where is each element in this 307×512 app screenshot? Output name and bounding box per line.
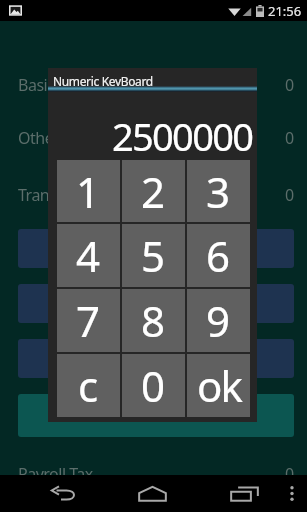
staticText: 0 [285,127,295,149]
button[interactable] [18,284,294,323]
button[interactable]: c [57,354,120,417]
button[interactable] [18,229,294,268]
staticText: 3 [206,163,231,220]
staticText: c [78,357,99,414]
button[interactable]: 5 [122,224,185,287]
staticText: 0 [285,74,295,96]
staticText: Other Allowance [18,127,135,149]
button[interactable]: 7 [57,289,120,352]
button[interactable]: Home [128,475,177,512]
staticText: 6 [206,227,231,284]
staticText: 7 [76,292,101,349]
staticText: 1 [76,163,101,220]
button[interactable]: ok [187,354,250,417]
button[interactable]: 3 [187,160,250,222]
button[interactable]: 1 [57,160,120,222]
staticText: ok [197,357,241,414]
staticText: 2 [141,163,166,220]
button[interactable]: Menu [277,475,306,512]
button[interactable]: 4 [57,224,120,287]
staticText: 0 [285,463,295,485]
button[interactable]: Recents [220,475,269,512]
staticText: Basic Salary [18,74,101,96]
staticText: 0 [285,184,295,206]
staticText: 8 [141,292,166,349]
button[interactable]: 6 [187,224,250,287]
staticText: 21:56 [268,2,302,20]
staticText: 2500000 [112,110,253,162]
staticText: 4 [76,227,101,284]
staticText: 9 [206,292,231,349]
button[interactable]: 8 [122,289,185,352]
button[interactable]: Back [39,475,88,512]
button[interactable]: 0 [122,354,185,417]
staticText: Payroll Tax [18,463,93,485]
staticText: 0 [141,357,166,414]
button[interactable]: 2 [122,160,185,222]
button[interactable] [18,394,294,437]
button[interactable]: 9 [187,289,250,352]
staticText: 5 [141,227,166,284]
button[interactable] [18,339,294,378]
staticText: Transport [18,184,87,206]
staticText: Numeric KeyBoard [53,73,153,89]
